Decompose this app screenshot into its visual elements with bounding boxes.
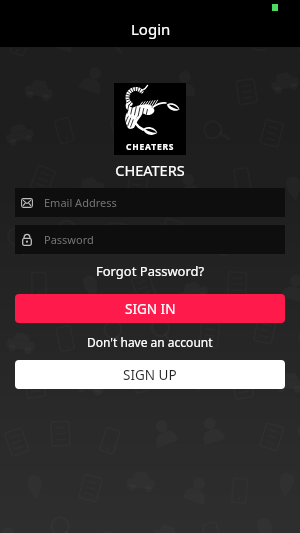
staticText: Login xyxy=(131,19,171,39)
button[interactable]: Forgot Password? xyxy=(96,262,205,280)
button[interactable]: SIGN UP xyxy=(15,360,285,389)
staticText: SIGN IN xyxy=(125,300,176,318)
button[interactable]: Email Address xyxy=(15,188,285,217)
staticText: Don't have an account xyxy=(87,334,213,350)
staticText: Forgot Password? xyxy=(96,262,205,280)
button[interactable]: Password xyxy=(15,225,285,254)
staticText: CHEATERS xyxy=(0,160,300,180)
staticText: CHEATERS xyxy=(126,141,175,153)
staticText: Password xyxy=(44,232,94,247)
staticText: SIGN UP xyxy=(123,366,177,384)
button[interactable]: Don't have an account xyxy=(0,334,300,350)
staticText: Email Address xyxy=(44,195,117,210)
button[interactable]: SIGN IN xyxy=(15,294,285,323)
